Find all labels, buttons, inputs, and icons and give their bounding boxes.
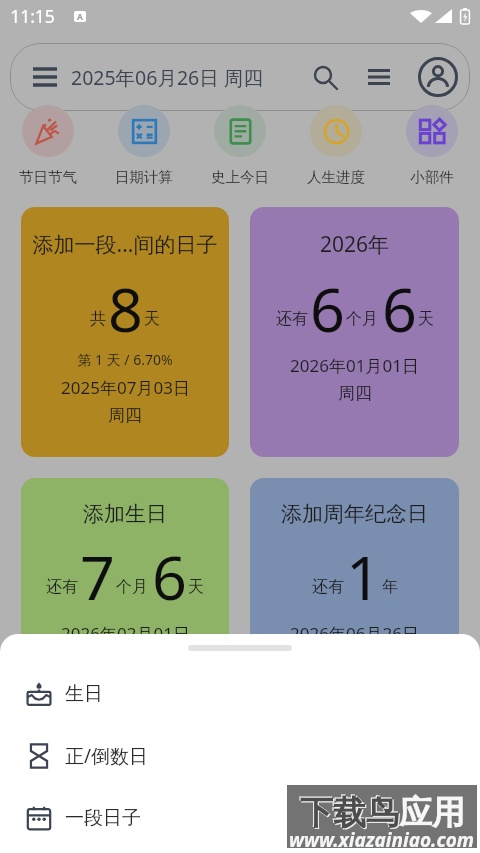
button[interactable]: 日期计算 (96, 105, 192, 186)
staticText: 还有 (312, 577, 344, 597)
staticText: 2026年 (256, 230, 453, 259)
button[interactable]: 史上今日 (192, 105, 288, 186)
button[interactable]: Account (418, 57, 458, 97)
staticText: 2026年01月01日 (290, 354, 419, 377)
staticText: 个月 (116, 577, 148, 597)
button[interactable]: Menu (33, 67, 57, 87)
staticText: 6 (310, 267, 345, 350)
button[interactable]: Search (313, 65, 338, 90)
staticText: 下载鸟 (301, 793, 400, 835)
staticText: 7 (80, 535, 115, 618)
button[interactable]: Menu (10, 43, 470, 111)
staticText: 还有 (46, 577, 78, 597)
staticText: 添加一段...间的日子 (27, 230, 223, 259)
staticText: 小部件 (410, 168, 454, 186)
button[interactable]: Sort (368, 68, 390, 86)
staticText: 个月 (346, 309, 378, 329)
button[interactable]: 生日 (0, 663, 480, 725)
button[interactable]: 人生进度 (288, 105, 384, 186)
staticText: 天 (188, 577, 204, 597)
button[interactable]: 添加生日 (21, 478, 229, 728)
staticText: 周四 (108, 405, 142, 426)
staticText: 1 (346, 535, 381, 618)
staticText: 史上今日 (211, 168, 269, 186)
staticText: 周四 (338, 383, 372, 404)
staticText: 11:15 (10, 4, 55, 28)
staticText: 2026年02月01日 (61, 622, 190, 645)
staticText: 还有 (276, 309, 308, 329)
staticText: 节日节气 (19, 168, 77, 186)
staticText: 下载鸟 (299, 791, 398, 833)
staticText: 下载鸟 (300, 792, 399, 834)
staticText: 共 (90, 309, 106, 329)
staticText: 8 (108, 267, 143, 350)
staticText: 生日 (65, 682, 103, 706)
staticText: A (77, 11, 83, 22)
staticText: 应用 (399, 792, 465, 834)
staticText: 2025年06月26日 周四 (71, 64, 313, 91)
staticText: 2025年07月03日 (61, 376, 190, 399)
button[interactable]: 节日节气 (0, 105, 96, 186)
staticText: 6 (152, 535, 187, 618)
button[interactable]: 一段日子 (0, 787, 480, 849)
staticText: 添加生日 (27, 501, 223, 527)
staticText: 人生进度 (307, 168, 365, 186)
button[interactable]: 小部件 (384, 105, 480, 186)
staticText: 天 (144, 309, 160, 329)
staticText: 2026年06月26日 (290, 622, 419, 645)
staticText: 正/倒数日 (65, 743, 149, 769)
button[interactable]: 添加一段...间的日子 (21, 207, 229, 457)
staticText: 6 (382, 267, 417, 350)
staticText: 添加周年纪念日 (256, 501, 453, 527)
button[interactable]: 添加周年纪念日 (250, 478, 459, 728)
staticText: 日期计算 (115, 168, 173, 186)
staticText: 一段日子 (65, 806, 141, 830)
button[interactable]: 2026年 (250, 207, 459, 457)
staticText: www.xiazainiao.com (289, 827, 475, 853)
staticText: 天 (418, 309, 434, 329)
button[interactable]: 正/倒数日 (0, 725, 480, 787)
staticText: 第 1 天 / 6.70% (77, 350, 173, 369)
staticText: 年 (382, 577, 398, 597)
